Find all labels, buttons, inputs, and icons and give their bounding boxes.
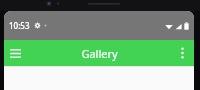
- button[interactable]: More options: [172, 43, 192, 63]
- staticText: 10:53: [9, 20, 30, 31]
- button[interactable]: Open navigation drawer: [5, 43, 25, 63]
- staticText: Gallery: [81, 46, 118, 61]
